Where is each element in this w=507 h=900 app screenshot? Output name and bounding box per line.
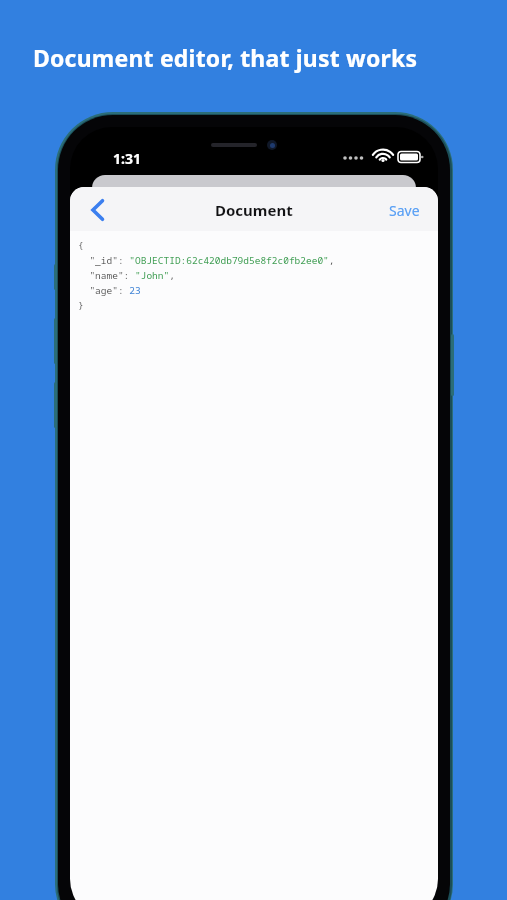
staticText: "_id": "OBJECTID:62c420db79d5e8f2c0fb2ee…	[78, 254, 335, 267]
staticText: {	[78, 239, 84, 252]
staticText: Document	[215, 200, 293, 220]
button[interactable]: Back	[78, 191, 118, 229]
staticText: }	[78, 299, 84, 312]
staticText: Document editor, that just works	[33, 42, 418, 73]
button[interactable]: Save	[378, 195, 430, 225]
staticText: 1:31	[113, 149, 141, 168]
staticText: "name": "John",	[78, 269, 175, 282]
staticText: "age": 23	[78, 284, 141, 297]
staticText: Save	[389, 201, 420, 220]
